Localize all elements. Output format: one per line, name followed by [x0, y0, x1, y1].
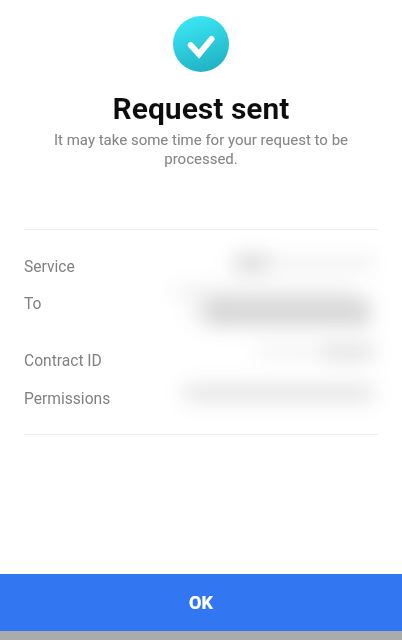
button[interactable]: OK: [0, 574, 402, 631]
staticText: OK: [189, 592, 213, 613]
staticText: Request sent: [0, 91, 402, 126]
staticText: Service: [24, 258, 75, 276]
staticText: Permissions: [24, 390, 111, 408]
other: Request sent successfully: [173, 16, 229, 72]
staticText: To: [24, 295, 42, 313]
staticText: It may take some time for your request t…: [44, 131, 358, 168]
staticText: Contract ID: [24, 352, 102, 370]
